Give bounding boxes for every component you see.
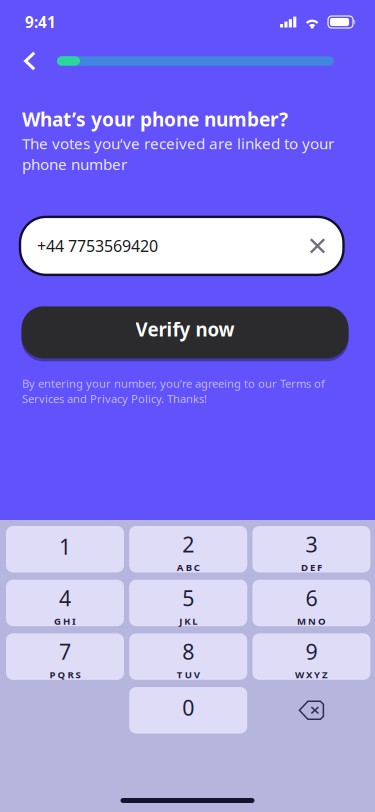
- staticText: M: [297, 614, 306, 627]
- staticText: U: [185, 668, 192, 681]
- button[interactable]: 2: [129, 526, 247, 572]
- staticText: J: [179, 614, 182, 627]
- button[interactable]: 7: [6, 633, 124, 680]
- staticText: E: [310, 561, 315, 574]
- staticText: Z: [322, 668, 328, 681]
- staticText: By entering your number, you’re agreeing…: [22, 376, 325, 406]
- button[interactable]: 8: [129, 633, 247, 680]
- staticText: What’s your phone number?: [22, 106, 288, 132]
- staticText: C: [194, 561, 200, 574]
- staticText: K: [184, 614, 190, 627]
- staticText: +44 7753569420: [37, 235, 158, 257]
- staticText: G: [54, 614, 61, 627]
- staticText: S: [75, 668, 80, 681]
- staticText: 7: [59, 637, 71, 666]
- staticText: N: [308, 614, 316, 627]
- staticText: 5: [182, 583, 194, 612]
- staticText: D: [301, 561, 308, 574]
- button[interactable]: Back: [18, 44, 42, 78]
- staticText: 0: [182, 693, 194, 722]
- staticText: I: [72, 614, 76, 627]
- staticText: V: [194, 668, 200, 681]
- button[interactable]: 4: [6, 580, 124, 626]
- button[interactable]: 9: [252, 633, 370, 680]
- staticText: A: [177, 561, 184, 574]
- staticText: H: [63, 614, 70, 627]
- button[interactable]: Verify now: [21, 303, 348, 361]
- staticText: 2: [182, 530, 194, 559]
- staticText: 9:41: [25, 12, 56, 32]
- staticText: Verify now: [135, 317, 234, 342]
- staticText: The votes you’ve received are linked to …: [22, 133, 334, 174]
- button[interactable]: 0: [129, 687, 247, 733]
- staticText: 3: [305, 530, 317, 559]
- staticText: 4: [59, 583, 71, 612]
- button[interactable]: 1: [6, 526, 124, 572]
- staticText: O: [318, 614, 326, 627]
- staticText: P: [49, 668, 55, 681]
- staticText: B: [186, 561, 192, 574]
- staticText: W: [295, 668, 304, 681]
- staticText: F: [317, 561, 322, 574]
- button[interactable]: Clear: [303, 232, 331, 260]
- staticText: Y: [314, 668, 320, 681]
- staticText: X: [306, 668, 312, 681]
- staticText: 9: [305, 637, 317, 666]
- button[interactable]: 3: [252, 526, 370, 572]
- button[interactable]: 6: [252, 580, 370, 626]
- button[interactable]: 5: [129, 580, 247, 626]
- staticText: L: [192, 614, 197, 627]
- staticText: 6: [305, 583, 317, 612]
- staticText: Q: [57, 668, 65, 681]
- staticText: 8: [182, 637, 194, 666]
- staticText: T: [177, 668, 183, 681]
- staticText: 1: [59, 532, 71, 561]
- button[interactable]: Delete: [252, 687, 370, 733]
- staticText: R: [67, 668, 73, 681]
